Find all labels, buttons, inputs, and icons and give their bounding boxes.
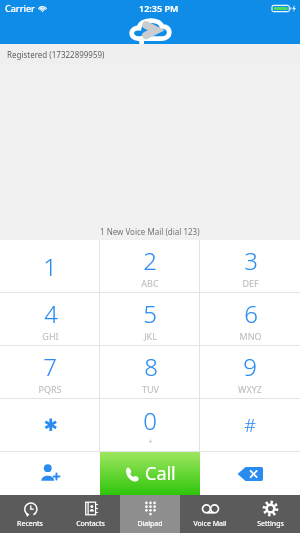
staticText: Voice Mail <box>193 519 227 529</box>
staticText: 0 <box>143 404 157 437</box>
button[interactable]: Delete <box>200 452 300 495</box>
staticText: 6 <box>244 297 258 330</box>
staticText: + <box>148 437 153 447</box>
staticText: 1 New Voice Mail (dial 123) <box>100 226 200 237</box>
staticText: 1 <box>43 250 57 283</box>
staticText: WXYZ <box>238 383 262 395</box>
button[interactable]: ✱ <box>0 399 100 451</box>
staticText: TUV <box>142 383 159 395</box>
button[interactable]: 3 <box>200 240 300 292</box>
button[interactable]: 5 <box>100 293 200 345</box>
button[interactable]: Voice Mail <box>180 495 240 533</box>
button[interactable]: Contacts <box>60 495 120 533</box>
staticText: MNO <box>239 330 262 342</box>
button[interactable]: Add contact <box>0 452 100 495</box>
staticText: Dialpad <box>137 519 163 529</box>
button[interactable]: 4 <box>0 293 100 345</box>
button[interactable]: Dialpad <box>120 495 180 533</box>
staticText: Contacts <box>76 519 105 529</box>
button[interactable]: 2 <box>100 240 200 292</box>
staticText: ABC <box>141 277 159 289</box>
staticText: 3 <box>244 244 258 277</box>
button[interactable]: # <box>200 399 300 451</box>
staticText: Call <box>145 461 176 486</box>
staticText: 2 <box>143 244 157 277</box>
button[interactable]: 8 <box>100 346 200 398</box>
staticText: Registered (17322899959) <box>7 49 105 60</box>
staticText: Settings <box>257 519 284 529</box>
button[interactable]: 6 <box>200 293 300 345</box>
staticText: JKL <box>144 330 157 342</box>
button[interactable]: Settings <box>240 495 300 533</box>
button[interactable]: 1 <box>0 240 100 292</box>
staticText: PQRS <box>38 383 62 395</box>
staticText: GHI <box>42 330 59 342</box>
button[interactable]: 9 <box>200 346 300 398</box>
staticText: DEF <box>242 277 259 289</box>
staticText: 7 <box>43 350 57 383</box>
staticText: # <box>244 413 256 438</box>
staticText: ✱ <box>43 415 58 435</box>
staticText: 9 <box>243 350 257 383</box>
button[interactable]: 0 <box>100 399 200 451</box>
button[interactable]: Call <box>100 452 200 495</box>
button[interactable]: Recents <box>0 495 60 533</box>
staticText: 4 <box>44 297 58 330</box>
staticText: 5 <box>143 297 157 330</box>
button[interactable]: 7 <box>0 346 100 398</box>
staticText: 8 <box>144 350 158 383</box>
staticText: Recents <box>17 519 43 529</box>
staticText: 12:35 PM <box>139 2 179 14</box>
staticText: Carrier <box>5 2 35 14</box>
